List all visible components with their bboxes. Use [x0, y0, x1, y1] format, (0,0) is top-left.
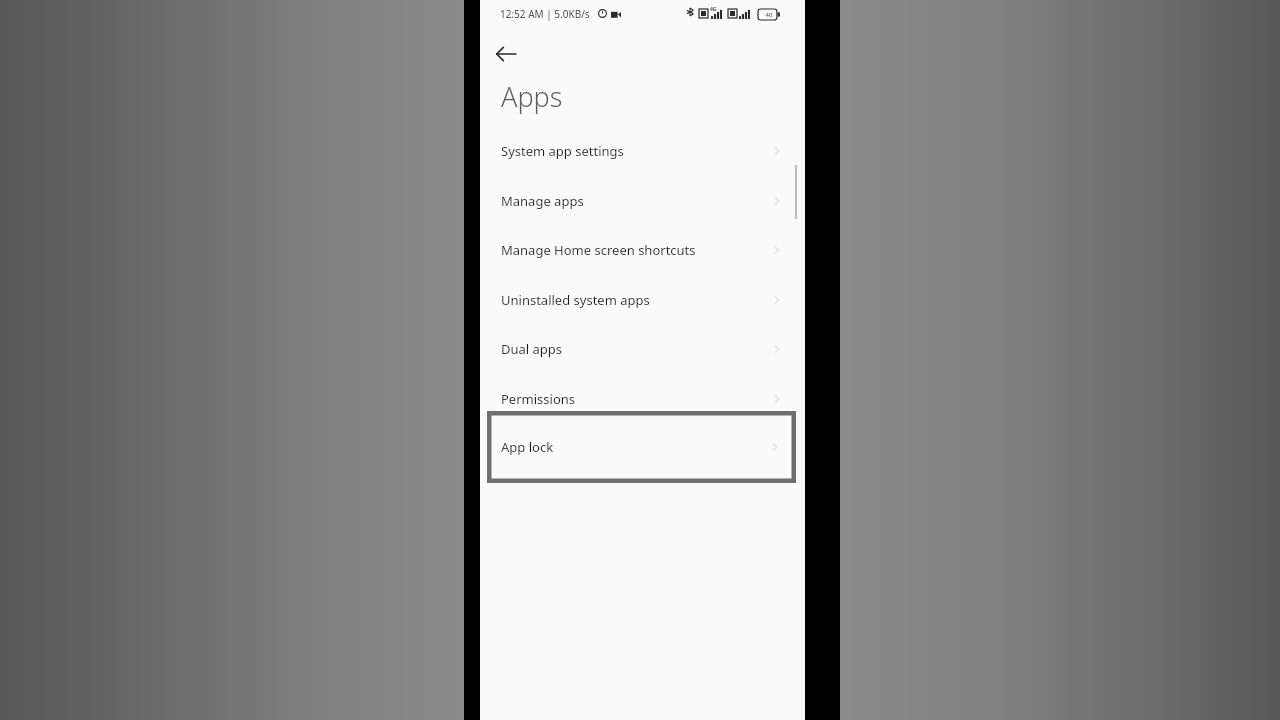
button[interactable]: Back	[486, 34, 526, 74]
staticText: Manage Home screen shortcuts	[501, 241, 696, 259]
staticText: Apps	[501, 78, 563, 115]
staticText: 4G	[710, 6, 717, 13]
staticText: Manage apps	[501, 192, 584, 210]
button[interactable]: App lock	[487, 411, 796, 483]
staticText: App lock	[501, 438, 554, 456]
button[interactable]: Uninstalled system apps	[480, 276, 805, 324]
staticText: System app settings	[501, 142, 624, 160]
staticText: Uninstalled system apps	[501, 291, 650, 309]
staticText: 12:52 AM | 5.0KB/s	[500, 7, 590, 21]
button[interactable]: Dual apps	[480, 325, 805, 373]
button[interactable]: Manage apps	[480, 177, 805, 225]
staticText: 40	[762, 11, 776, 19]
staticText: Permissions	[501, 390, 576, 408]
staticText: Dual apps	[501, 340, 563, 358]
button[interactable]: Manage Home screen shortcuts	[480, 226, 805, 274]
button[interactable]: System app settings	[480, 127, 805, 175]
button[interactable]: Permissions	[480, 375, 805, 423]
